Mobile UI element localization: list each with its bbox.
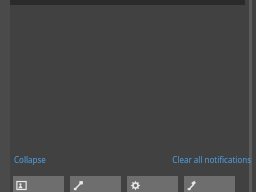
button[interactable]: Night light bbox=[184, 176, 235, 192]
button[interactable]: Connect bbox=[70, 176, 121, 192]
staticText: Clear all notifications bbox=[172, 154, 251, 165]
button[interactable]: Collapse bbox=[12, 151, 48, 168]
button[interactable]: Tablet mode bbox=[13, 176, 64, 192]
button[interactable]: All settings bbox=[127, 176, 178, 192]
button[interactable]: Clear all notifications bbox=[170, 151, 253, 168]
staticText: Collapse bbox=[14, 154, 46, 165]
